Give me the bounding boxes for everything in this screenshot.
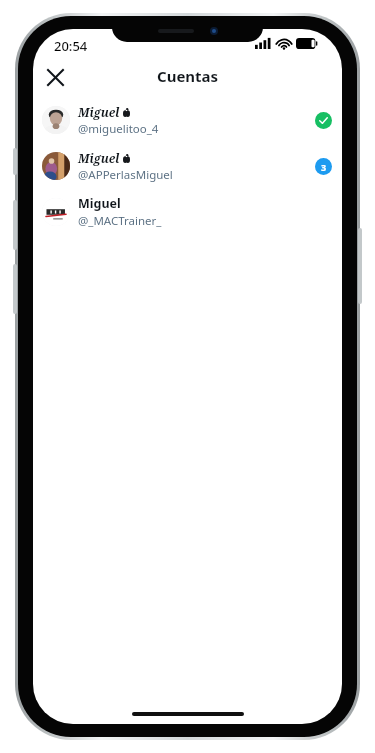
staticText: Miguel bbox=[78, 104, 120, 120]
staticText: Miguel bbox=[78, 195, 121, 212]
staticText: 3 bbox=[321, 161, 327, 173]
button[interactable]: Close bbox=[35, 57, 75, 97]
staticText: Cuentas bbox=[157, 66, 219, 86]
staticText: 20:54 bbox=[54, 37, 88, 55]
staticText: @APPerlasMiguel bbox=[78, 167, 173, 183]
staticText: @_MACTrainer_ bbox=[78, 213, 162, 229]
button[interactable]: Miguel bbox=[33, 97, 342, 143]
button[interactable]: Miguel bbox=[33, 143, 342, 189]
staticText: Miguel bbox=[78, 150, 120, 166]
button[interactable]: Miguel bbox=[33, 189, 342, 235]
staticText: @miguelitoo_4 bbox=[78, 121, 159, 137]
